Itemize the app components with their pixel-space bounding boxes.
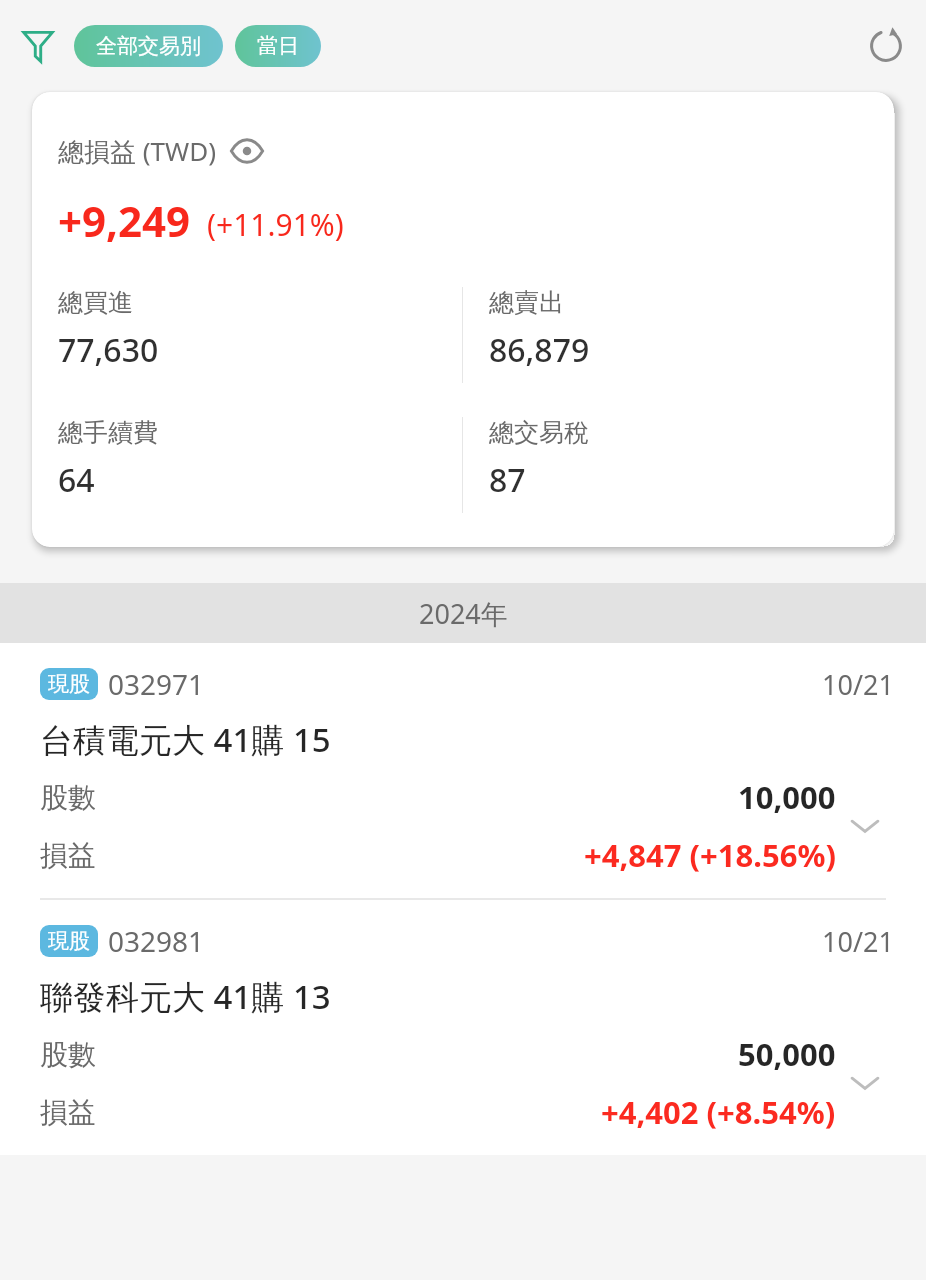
staticText: +9,249	[58, 192, 191, 249]
button[interactable]: 全部交易別	[74, 25, 223, 67]
staticText: 損益	[40, 1095, 96, 1130]
button[interactable]: Refresh	[862, 22, 910, 70]
staticText: 總損益 (TWD)	[58, 133, 216, 169]
staticText: 現股	[48, 671, 90, 697]
staticText: 10,000	[738, 776, 836, 818]
staticText: 股數	[40, 1037, 96, 1072]
staticText: +4,847 (+18.56%)	[584, 834, 836, 876]
staticText: 86,879	[489, 328, 590, 372]
staticText: 全部交易別	[96, 33, 201, 59]
button[interactable]: 當日	[235, 25, 321, 67]
button[interactable]: Filter	[16, 24, 60, 68]
staticText: 77,630	[58, 328, 159, 372]
button[interactable]: 現股	[0, 900, 926, 1155]
staticText: 總手續費	[58, 417, 158, 448]
staticText: 股數	[40, 780, 96, 815]
staticText: 50,000	[738, 1033, 836, 1075]
button[interactable]: Toggle visibility	[228, 132, 266, 170]
staticText: 聯發科元大 41購 13	[40, 974, 331, 1019]
staticText: 損益	[40, 838, 96, 873]
staticText: 032981	[108, 922, 205, 960]
button[interactable]: 現股	[0, 643, 926, 898]
staticText: 現股	[48, 928, 90, 954]
staticText: +4,402 (+8.54%)	[601, 1091, 836, 1133]
staticText: 64	[58, 458, 95, 502]
staticText: 032971	[108, 665, 205, 703]
staticText: (+11.91%)	[207, 204, 344, 245]
staticText: 總賣出	[489, 287, 564, 318]
staticText: 87	[489, 458, 526, 502]
staticText: 10/21	[822, 923, 894, 960]
staticText: 總買進	[58, 287, 133, 318]
staticText: 當日	[257, 33, 299, 59]
staticText: 2024年	[419, 595, 508, 632]
other: Expand	[836, 1054, 894, 1112]
staticText: 台積電元大 41購 15	[40, 717, 331, 762]
other: Expand	[836, 797, 894, 855]
staticText: 10/21	[822, 666, 894, 703]
staticText: 總交易稅	[489, 417, 589, 448]
